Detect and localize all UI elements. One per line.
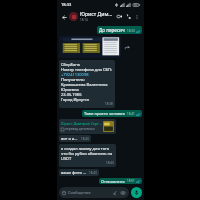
button[interactable]: Юрист Дмитрий Сергеевич	[59, 119, 116, 134]
button[interactable]: Attach	[112, 190, 118, 196]
staticText: Тоже просто человек	[84, 111, 125, 116]
staticText: 18:33	[127, 29, 135, 33]
staticText: Юрист Димит…	[80, 11, 115, 18]
button[interactable]: Video call	[115, 12, 124, 21]
button[interactable]: До пересич	[97, 26, 142, 34]
button[interactable]: ваше фото паспортрте	[59, 169, 99, 176]
button[interactable]: Call	[124, 12, 133, 21]
button[interactable]: Back	[60, 13, 68, 21]
button[interactable]: СберБанк	[59, 60, 115, 108]
button[interactable]: Forward	[124, 44, 131, 51]
button[interactable]: Отправлено	[99, 178, 142, 184]
staticText: Сообщение	[68, 190, 91, 195]
staticText: 18:33	[61, 2, 72, 7]
staticText: Отправлено	[101, 179, 125, 183]
staticText: 23.06.1986	[61, 92, 82, 97]
button[interactable]: Юрист Димит…	[69, 11, 115, 22]
staticText: 18:51	[127, 179, 135, 183]
staticText: СберБанк	[61, 62, 80, 67]
staticText: 18:14	[80, 18, 88, 22]
button[interactable]: Сообщение	[59, 187, 129, 198]
staticText: перевод денежных	[65, 127, 95, 131]
staticText: 18:43	[81, 137, 89, 141]
staticText: 18:43	[106, 161, 114, 165]
staticText: До пересич	[99, 27, 125, 33]
staticText: вот я им отправил	[61, 136, 79, 141]
button[interactable]: Voice message	[131, 187, 142, 198]
staticText: 18:43	[89, 171, 97, 175]
staticText: Получатель:	[61, 77, 85, 82]
button[interactable]: я создал заявку для того что бы рубли об…	[59, 144, 116, 167]
staticText: ваше фото паспортрте	[61, 170, 87, 175]
button[interactable]: вот я им отправил	[59, 135, 91, 142]
staticText: Номер телефона для СБП:	[61, 67, 112, 72]
staticText: 18:41	[127, 112, 135, 116]
staticText: 18:38	[105, 102, 113, 106]
staticText: Юрист Дмитрий Сергеевич	[61, 121, 102, 126]
staticText: я создал заявку для того что бы рубли об…	[61, 146, 114, 161]
button[interactable]: Тоже просто человек	[82, 110, 142, 117]
button[interactable]: Camera	[120, 190, 126, 196]
staticText: Кривошеева Валентина Юрьевна	[61, 82, 113, 92]
button[interactable]: Image attachment	[59, 36, 121, 58]
staticText: Город Иркутск	[61, 97, 90, 102]
button[interactable]: More options	[133, 13, 141, 21]
staticText: +79241130098	[61, 72, 89, 77]
